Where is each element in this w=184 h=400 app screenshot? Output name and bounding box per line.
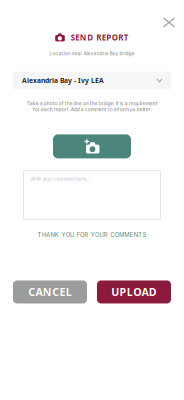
staticText: Write your comment here... xyxy=(30,176,89,182)
staticText: UPLOAD xyxy=(111,285,157,299)
button[interactable]: UPLOAD xyxy=(97,280,171,303)
button[interactable]: Alexandria Bay - Ivy LEA xyxy=(13,71,171,89)
staticText: CANCEL xyxy=(28,285,72,299)
staticText: Alexandria Bay - Ivy LEA xyxy=(22,76,104,85)
button[interactable]: Take a photo xyxy=(53,134,131,158)
button[interactable]: CANCEL xyxy=(13,280,87,303)
staticText: Take a photo of the line on the bridge. … xyxy=(26,100,157,112)
staticText: THANK YOU FOR YOUR COMMENTS xyxy=(38,231,146,238)
staticText: Location near Alexandria Bay bridge xyxy=(49,51,134,56)
staticText: SEND REPORT xyxy=(71,32,129,43)
button[interactable]: Close xyxy=(157,12,180,33)
button[interactable]: Write your comment here... xyxy=(23,170,160,219)
